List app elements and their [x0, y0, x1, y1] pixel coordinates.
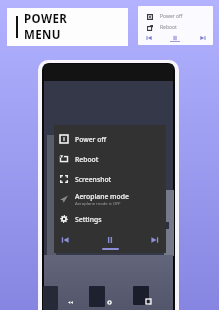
- staticText: Reboot: [75, 155, 99, 164]
- staticText: Reboot: [160, 24, 177, 31]
- button[interactable]: Previous track: [146, 35, 152, 41]
- staticText: MENU: [24, 27, 61, 43]
- staticText: Power off: [160, 13, 183, 20]
- button[interactable]: Home: [107, 300, 112, 305]
- button[interactable]: Back: [68, 300, 73, 305]
- button[interactable]: POWER: [7, 8, 128, 46]
- button[interactable]: Settings: [54, 209, 166, 229]
- button[interactable]: Next track: [151, 236, 159, 244]
- staticText: POWER: [24, 11, 68, 27]
- staticText: Aeroplane mode is OFF: [75, 201, 121, 207]
- button[interactable]: Reboot: [147, 23, 177, 32]
- staticText: Screenshot: [75, 175, 112, 184]
- staticText: Settings: [75, 215, 102, 224]
- staticText: Aeroplane mode: [75, 192, 129, 201]
- button[interactable]: Previous track: [61, 236, 69, 244]
- staticText: Power off: [75, 135, 107, 144]
- button[interactable]: Pause: [172, 35, 178, 41]
- button[interactable]: Screenshot: [54, 169, 166, 189]
- button[interactable]: Power off: [147, 12, 183, 21]
- button[interactable]: Recent apps: [146, 299, 151, 304]
- button[interactable]: Aeroplane mode: [54, 189, 166, 209]
- button[interactable]: Next track: [200, 35, 206, 41]
- button[interactable]: Power off: [54, 129, 166, 149]
- button[interactable]: Reboot: [54, 149, 166, 169]
- button[interactable]: Pause: [106, 236, 114, 244]
